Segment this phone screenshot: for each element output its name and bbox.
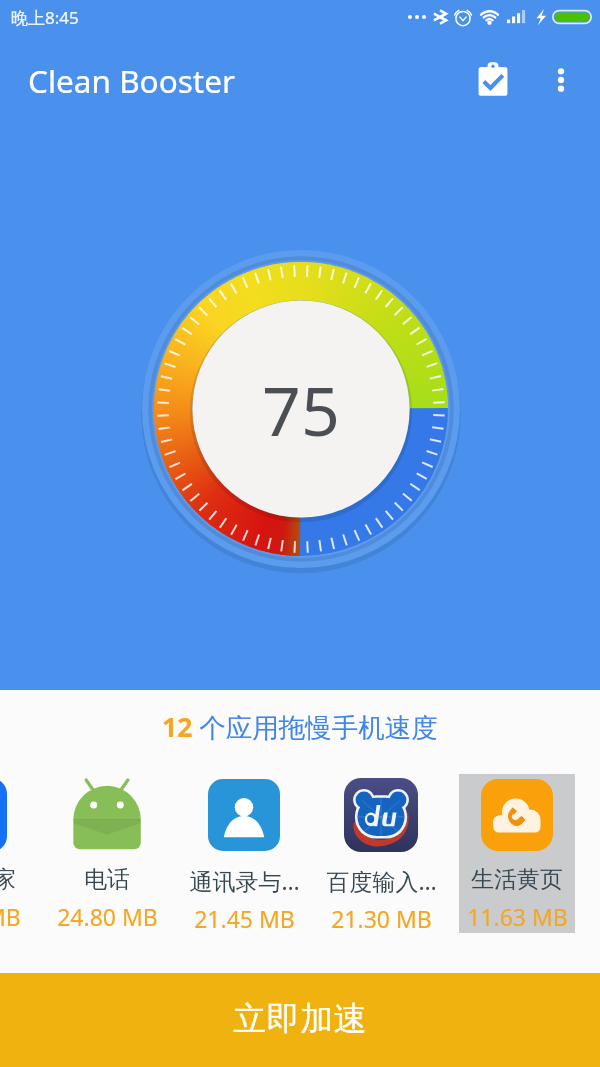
staticText: 25.30 MB: [0, 901, 21, 932]
button[interactable]: Task list: [468, 49, 530, 111]
button[interactable]: 通讯录与…: [186, 774, 302, 933]
button[interactable]: More options: [530, 49, 592, 111]
staticText: 75: [262, 363, 340, 456]
staticText: 百度输入…: [326, 865, 437, 896]
staticText: 生活黄页: [471, 865, 563, 894]
staticText: 晚上8:45: [11, 6, 79, 29]
staticText: Clean Booster: [28, 59, 468, 102]
staticText: 通讯录与…: [189, 865, 300, 896]
staticText: 21.45 MB: [194, 903, 295, 933]
staticText: 小米之家: [0, 865, 16, 894]
button[interactable]: 百度输入…: [323, 774, 439, 933]
staticText: 立即加速: [233, 998, 367, 1040]
button[interactable]: 生活黄页: [459, 774, 575, 933]
button[interactable]: 立即加速: [0, 973, 600, 1067]
staticText: 21.30 MB: [331, 903, 432, 933]
button[interactable]: 电话: [49, 774, 165, 933]
staticText: 电话: [84, 865, 130, 894]
staticText: 11.63 MB: [467, 901, 568, 932]
staticText: 24.80 MB: [57, 901, 158, 932]
staticText: 12 个应用拖慢手机速度: [162, 709, 438, 745]
button[interactable]: 小米之家: [0, 774, 28, 933]
